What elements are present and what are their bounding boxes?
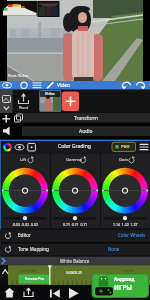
staticText: ИГРЫ — [114, 283, 132, 291]
staticText: Gain — [119, 157, 129, 163]
button[interactable] — [52, 168, 98, 214]
staticText: Gamma — [66, 157, 82, 163]
button[interactable] — [39, 90, 61, 112]
staticText: PRO — [121, 144, 130, 150]
staticText: Transform — [74, 115, 98, 122]
button[interactable] — [0, 243, 150, 256]
button[interactable] — [102, 168, 148, 214]
button[interactable] — [14, 142, 24, 152]
staticText: Receive Pro — [25, 276, 44, 281]
staticText: -0.02 -0.02 -0.02 — [12, 222, 39, 227]
staticText: White Balance — [60, 258, 90, 264]
staticText: Color Wheels — [118, 232, 146, 238]
button[interactable] — [0, 229, 150, 242]
button[interactable] — [19, 81, 29, 90]
button[interactable] — [92, 274, 149, 298]
button[interactable] — [2, 81, 12, 90]
staticText: Андроид — [114, 276, 135, 282]
staticText: Root — [19, 105, 29, 111]
button[interactable] — [134, 81, 148, 90]
button[interactable] — [14, 90, 36, 113]
staticText: Tone Mapping — [18, 246, 49, 252]
button[interactable] — [0, 256, 150, 265]
staticText: Video — [57, 82, 70, 89]
button[interactable] — [47, 286, 63, 300]
button[interactable] — [138, 142, 150, 152]
button[interactable] — [22, 126, 150, 136]
button[interactable] — [26, 142, 36, 152]
staticText: 0:00:00:00 — [20, 269, 36, 273]
staticText: Root Video — [8, 73, 29, 78]
staticText: 1.14 1.22 1.37 — [113, 222, 138, 227]
button[interactable] — [120, 81, 134, 90]
button[interactable] — [21, 286, 35, 300]
staticText: Video — [45, 91, 55, 96]
staticText: 0:00:03.25 — [66, 270, 82, 274]
button[interactable] — [62, 91, 79, 111]
button[interactable] — [112, 142, 136, 152]
staticText: Editor — [18, 232, 31, 238]
staticText: None — [108, 246, 120, 252]
button[interactable] — [2, 286, 16, 300]
button[interactable] — [18, 274, 49, 284]
button[interactable] — [46, 81, 76, 90]
staticText: Lift — [20, 157, 27, 163]
button[interactable] — [0, 90, 12, 113]
button[interactable] — [2, 168, 48, 214]
button[interactable] — [22, 113, 150, 123]
button[interactable] — [32, 81, 42, 90]
staticText: Audio — [79, 128, 93, 135]
button[interactable] — [2, 142, 12, 152]
button[interactable] — [66, 286, 82, 300]
staticText: 0:00:06 — [123, 269, 134, 273]
staticText: 0.71 0.71 0.71 — [63, 222, 88, 227]
staticText: Color Grading — [58, 143, 91, 150]
